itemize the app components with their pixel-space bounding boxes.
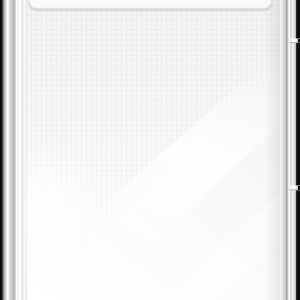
button[interactable]: Phone device preview [0,0,300,300]
